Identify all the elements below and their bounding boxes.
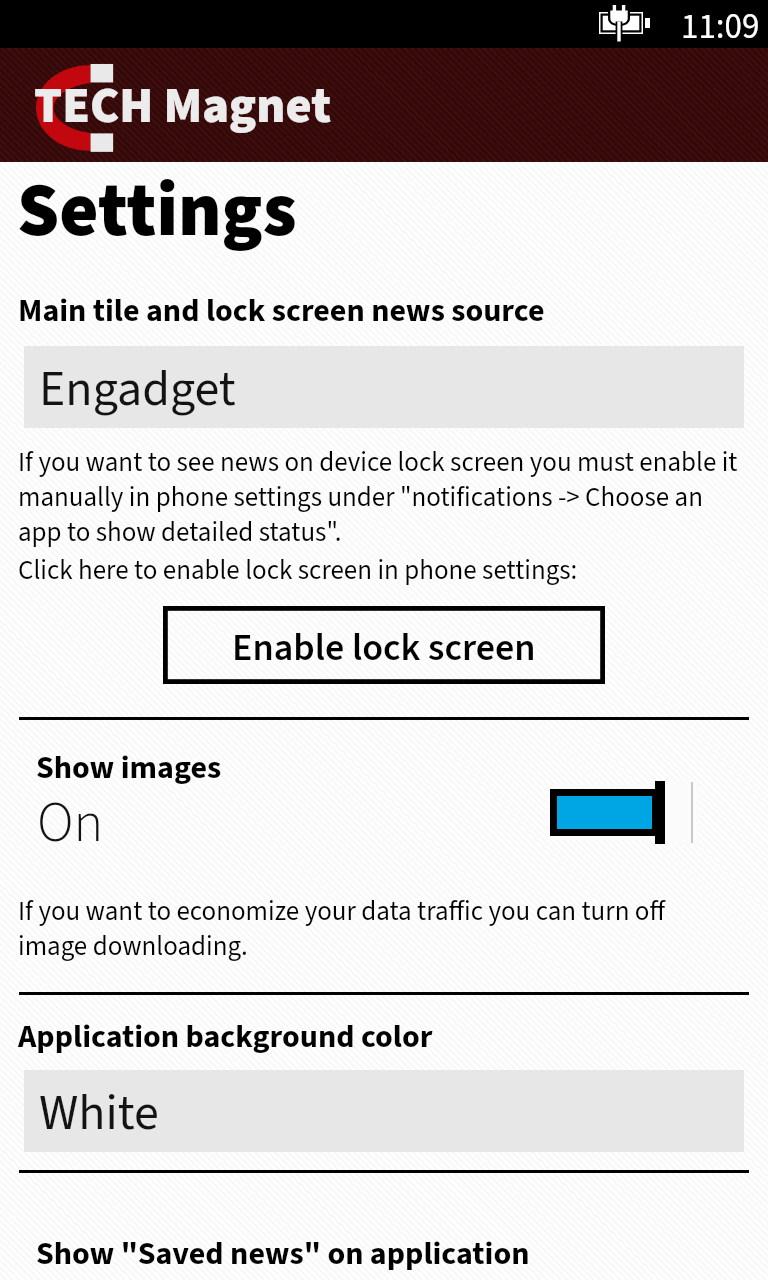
staticText: TECH Magnet	[34, 71, 332, 142]
button[interactable]: Enable lock screen	[163, 606, 605, 684]
staticText: Enable lock screen	[232, 621, 536, 675]
staticText: Show images	[36, 745, 222, 791]
staticText: If you want to economize your data traff…	[18, 895, 718, 965]
staticText: Engadget	[39, 354, 236, 425]
other: Battery charging	[599, 6, 651, 38]
staticText: White	[39, 1078, 159, 1149]
button[interactable]: Show images toggle	[544, 776, 704, 850]
button[interactable]: White	[24, 1070, 744, 1152]
staticText: Settings	[17, 158, 297, 265]
staticText: If you want to see news on device lock s…	[18, 446, 740, 551]
button[interactable]: Show images, On	[19, 735, 749, 855]
staticText: 11:09	[681, 2, 760, 50]
staticText: Show "Saved news" on application	[36, 1231, 530, 1277]
staticText: Application background color	[18, 1014, 433, 1060]
staticText: On	[37, 784, 104, 864]
staticText: Main tile and lock screen news source	[18, 288, 545, 334]
staticText: Click here to enable lock screen in phon…	[18, 551, 578, 589]
button[interactable]: Engadget	[24, 346, 744, 428]
